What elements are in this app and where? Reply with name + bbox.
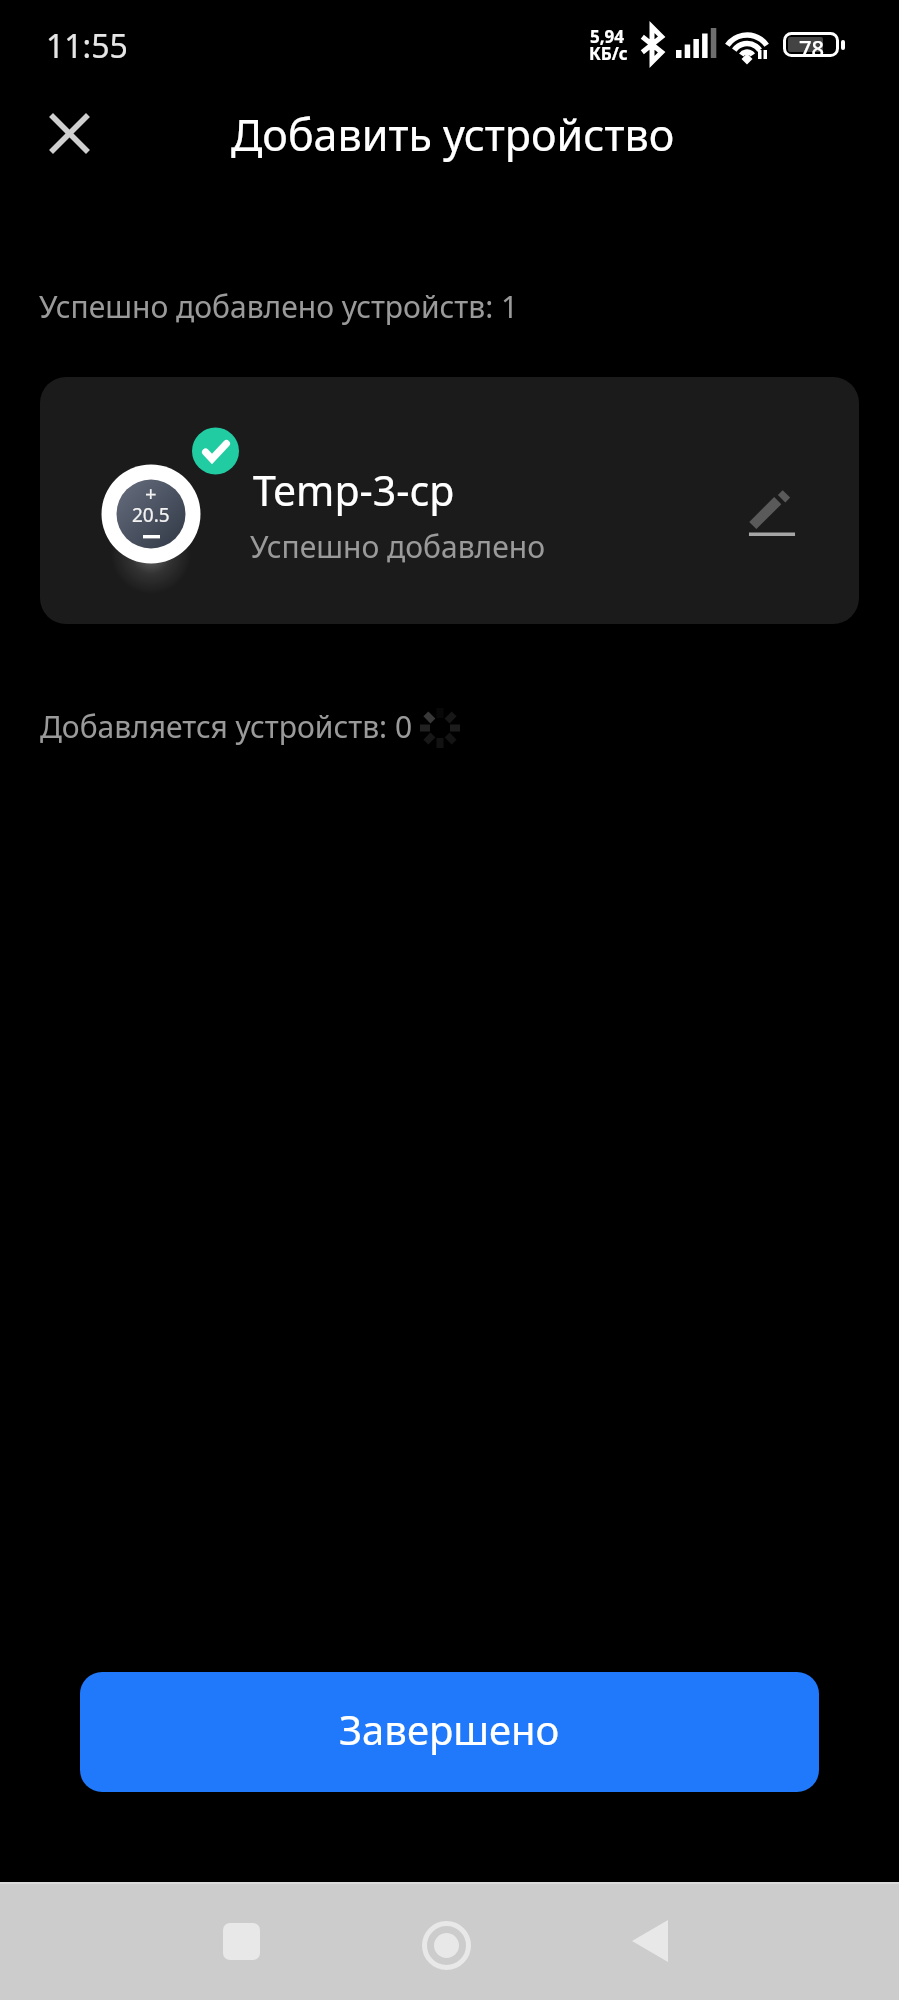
button[interactable]: Back bbox=[595, 1886, 705, 1996]
staticText: Добавить устройство bbox=[231, 105, 675, 164]
staticText: Успешно добавлено bbox=[250, 526, 545, 567]
staticText: 78 bbox=[799, 33, 825, 63]
button[interactable]: + bbox=[40, 377, 859, 624]
staticText: Успешно добавлено устройств: 1 bbox=[39, 286, 519, 327]
button[interactable]: Recent apps bbox=[186, 1886, 296, 1996]
staticText: КБ/с bbox=[589, 42, 628, 65]
staticText: Добавляется устройств: 0 bbox=[40, 706, 413, 747]
staticText: Temp-3-cp bbox=[253, 462, 455, 518]
staticText: 20.5 bbox=[132, 502, 170, 526]
button[interactable]: Home bbox=[391, 1890, 501, 2000]
staticText: 5,94 bbox=[590, 25, 625, 48]
button[interactable]: Close bbox=[24, 88, 115, 179]
staticText: Завершено bbox=[339, 1702, 560, 1756]
staticText: 11:55 bbox=[46, 24, 128, 68]
staticText: + bbox=[145, 480, 157, 504]
button[interactable]: Edit device name bbox=[730, 472, 814, 556]
button[interactable]: Завершено bbox=[80, 1672, 819, 1792]
